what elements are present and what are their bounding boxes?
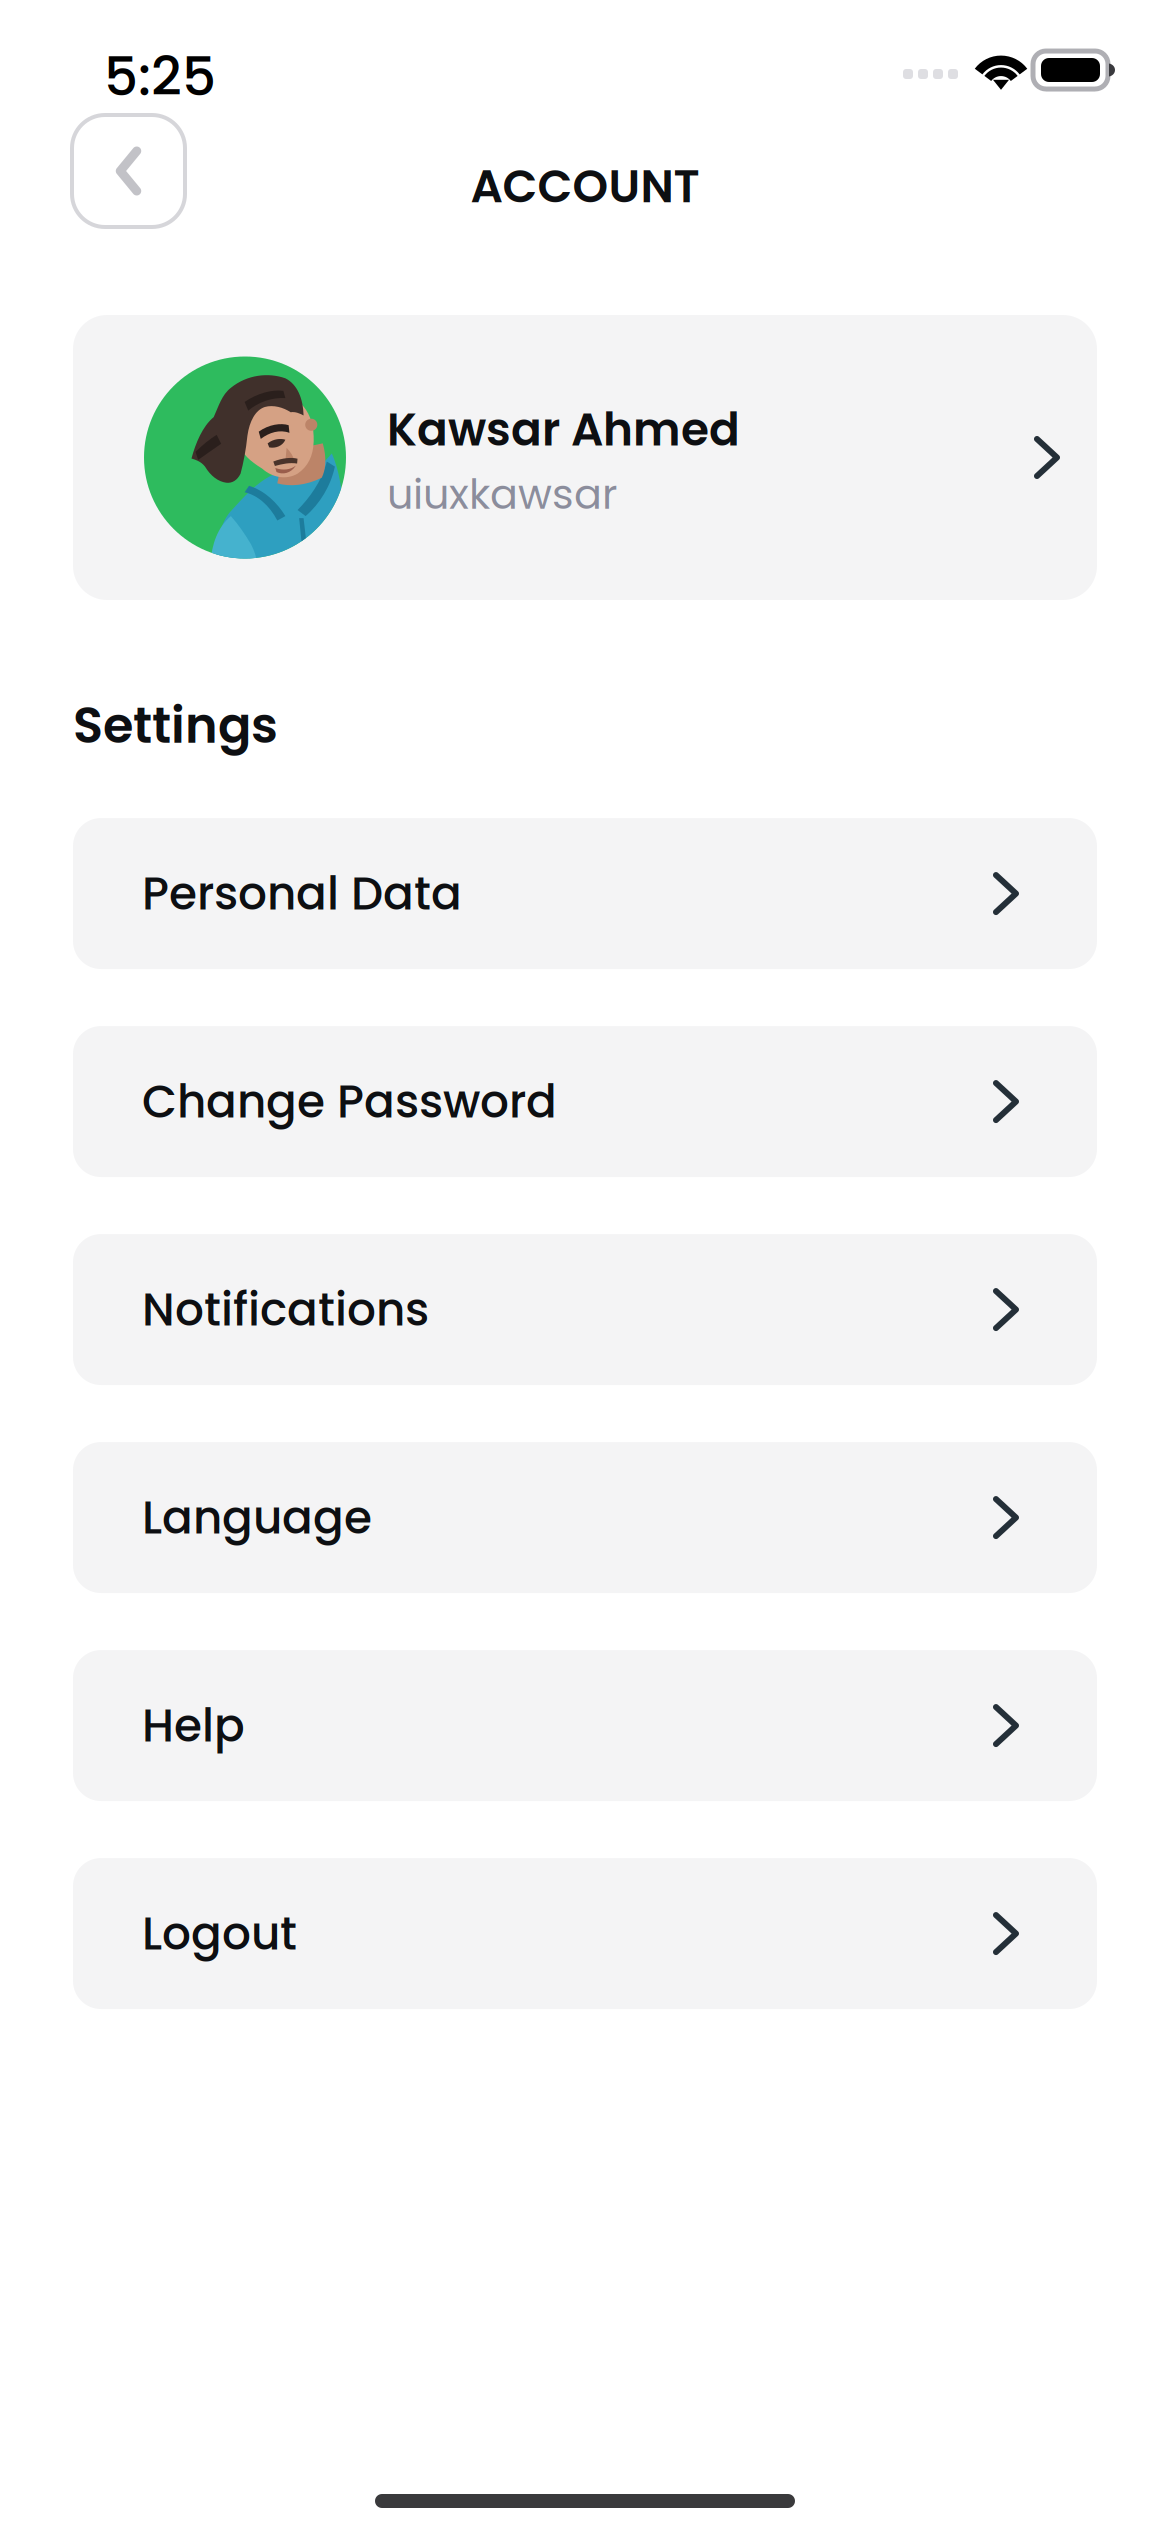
button[interactable]: Back <box>72 115 185 227</box>
button[interactable]: Language <box>73 1442 1097 1593</box>
staticText: Settings <box>73 691 278 760</box>
staticText: Notifications <box>142 1278 429 1341</box>
button[interactable]: Kawsar Ahmed <box>73 315 1097 600</box>
button[interactable]: Notifications <box>73 1234 1097 1385</box>
staticText: Language <box>142 1486 372 1549</box>
staticText: Kawsar Ahmed <box>387 398 740 461</box>
staticText: uiuxkawsar <box>387 465 617 523</box>
button[interactable]: Personal Data <box>73 818 1097 969</box>
button[interactable]: Change Password <box>73 1026 1097 1177</box>
button[interactable]: Help <box>73 1650 1097 1801</box>
staticText: Personal Data <box>142 862 462 925</box>
staticText: Logout <box>142 1902 297 1965</box>
staticText: 5:25 <box>104 39 216 114</box>
staticText: Change Password <box>142 1070 557 1133</box>
staticText: Help <box>142 1694 245 1757</box>
button[interactable]: Logout <box>73 1858 1097 2009</box>
staticText: ACCOUNT <box>470 154 699 218</box>
